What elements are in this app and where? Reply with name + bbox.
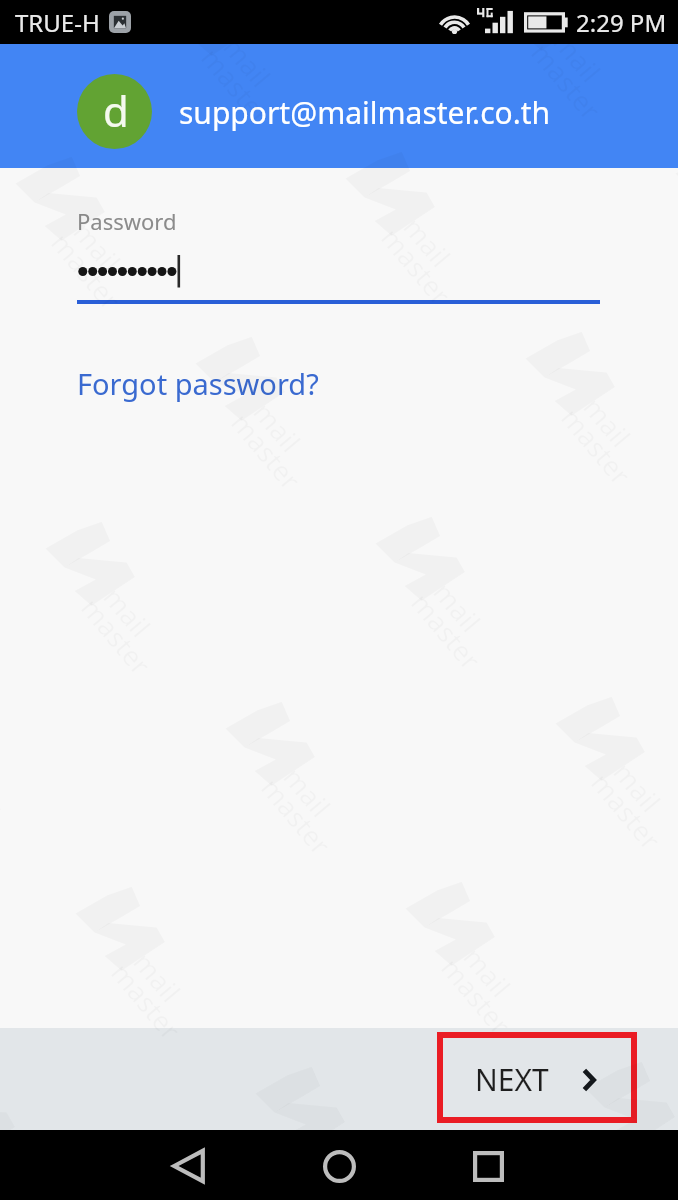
staticText: d [103,82,129,139]
staticText: Forgot password? [77,364,319,403]
button[interactable]: Back [153,1131,223,1200]
button[interactable]: Forgot password? [77,364,319,403]
button[interactable]: Home [304,1131,374,1200]
staticText: NEXT [475,1059,549,1100]
staticText: Password [77,206,177,236]
staticText: support@mailmaster.co.th [179,92,551,133]
button[interactable]: Recent apps [453,1131,523,1200]
staticText: TRUE-H [15,6,100,39]
button[interactable]: Account avatar [77,74,152,149]
button[interactable]: NEXT [437,1032,637,1123]
staticText: 2:29 PM [576,6,667,39]
